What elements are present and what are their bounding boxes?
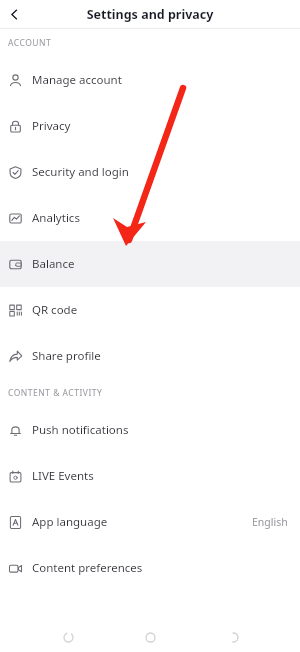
staticText: Push notifications <box>32 422 129 438</box>
button[interactable]: Share profile <box>0 333 300 379</box>
button[interactable]: Security and login <box>0 149 300 195</box>
button[interactable]: Privacy <box>0 103 300 149</box>
staticText: CONTENT & ACTIVITY <box>8 387 103 399</box>
button[interactable]: Back <box>0 0 28 28</box>
staticText: Security and login <box>32 164 129 180</box>
staticText: Analytics <box>32 210 80 226</box>
staticText: English <box>252 515 288 529</box>
button[interactable]: Home <box>135 622 165 652</box>
staticText: App language <box>32 514 108 530</box>
button[interactable]: Push notifications <box>0 407 300 453</box>
staticText: Share profile <box>32 348 101 364</box>
button[interactable]: App language <box>0 499 300 545</box>
button[interactable]: Back <box>218 622 248 652</box>
staticText: QR code <box>32 302 78 318</box>
staticText: Manage account <box>32 72 122 88</box>
button[interactable]: Recents <box>53 622 83 652</box>
button[interactable]: LIVE Events <box>0 453 300 499</box>
button[interactable]: Analytics <box>0 195 300 241</box>
staticText: Content preferences <box>32 560 143 576</box>
staticText: ACCOUNT <box>8 37 52 49</box>
button[interactable]: QR code <box>0 287 300 333</box>
button[interactable]: Balance <box>0 241 300 287</box>
staticText: Privacy <box>32 118 71 134</box>
staticText: Balance <box>32 256 75 272</box>
button[interactable]: Content preferences <box>0 545 300 591</box>
staticText: Settings and privacy <box>0 6 300 23</box>
button[interactable]: Manage account <box>0 57 300 103</box>
staticText: LIVE Events <box>32 468 94 484</box>
